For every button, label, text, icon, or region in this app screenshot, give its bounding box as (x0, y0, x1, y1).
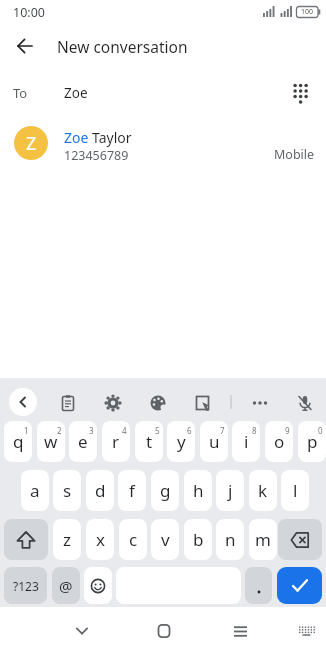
staticText: 123456789 (64, 147, 129, 164)
button[interactable] (277, 567, 322, 604)
button[interactable] (292, 616, 320, 644)
staticText: x (96, 528, 105, 551)
staticText: m (255, 528, 271, 551)
staticText: q (13, 430, 24, 453)
staticText: 4 (122, 425, 127, 436)
button[interactable]: m (249, 519, 277, 560)
staticText: Z (26, 131, 37, 156)
staticText: j (228, 479, 233, 502)
button[interactable]: t (135, 421, 163, 462)
button[interactable] (98, 388, 128, 418)
button[interactable] (245, 388, 275, 418)
button[interactable]: i (232, 421, 260, 462)
staticText: 0 (318, 425, 323, 436)
staticText: d (95, 479, 106, 502)
button[interactable]: o (265, 421, 293, 462)
staticText: w (44, 430, 58, 453)
staticText: 8 (252, 425, 257, 436)
staticText: New conversation (57, 36, 188, 57)
staticText: s (63, 479, 72, 502)
staticText: n (225, 528, 236, 551)
button[interactable]: g (151, 470, 179, 511)
staticText: ?123 (13, 578, 39, 594)
button[interactable] (290, 388, 320, 418)
button[interactable]: n (216, 519, 244, 560)
staticText: i (244, 430, 249, 453)
button[interactable] (245, 567, 272, 604)
button[interactable] (143, 388, 173, 418)
button[interactable] (4, 519, 48, 560)
button[interactable]: v (151, 519, 179, 560)
button[interactable]: d (86, 470, 114, 511)
staticText: 10:00 (13, 4, 45, 21)
button[interactable]: b (184, 519, 212, 560)
button[interactable]: l (281, 470, 309, 511)
button[interactable]: q (4, 421, 32, 462)
button[interactable]: u (200, 421, 228, 462)
staticText: e (78, 430, 88, 453)
button[interactable] (224, 615, 256, 647)
staticText: Zoe Taylor (64, 128, 132, 147)
button[interactable] (9, 30, 41, 62)
button[interactable]: j (216, 470, 244, 511)
button[interactable] (9, 388, 37, 416)
button[interactable] (53, 388, 83, 418)
staticText: t (146, 430, 153, 453)
staticText: 2 (57, 425, 62, 436)
button[interactable]: ?123 (4, 567, 47, 604)
button[interactable]: k (249, 470, 277, 511)
button[interactable] (0, 118, 326, 168)
staticText: l (293, 479, 298, 502)
staticText: 9 (285, 425, 290, 436)
staticText: 3 (89, 425, 94, 436)
staticText: r (112, 430, 120, 453)
staticText: @ (59, 576, 73, 596)
button[interactable]: x (86, 519, 114, 560)
staticText: 6 (187, 425, 192, 436)
button[interactable] (188, 388, 218, 418)
staticText: Mobile (274, 146, 315, 163)
button[interactable]: a (21, 470, 49, 511)
button[interactable]: r (102, 421, 130, 462)
staticText: 100 (301, 7, 314, 17)
button[interactable] (148, 615, 180, 647)
button[interactable] (288, 81, 314, 107)
button[interactable]: z (53, 519, 81, 560)
staticText: 5 (155, 425, 160, 436)
button[interactable]: c (119, 519, 147, 560)
button[interactable]: f (118, 470, 146, 511)
staticText: b (193, 528, 204, 551)
staticText: f (129, 479, 135, 502)
button[interactable]: @ (52, 567, 80, 604)
staticText: u (209, 430, 220, 453)
button[interactable]: p (298, 421, 326, 462)
staticText: a (30, 479, 40, 502)
staticText: 1 (24, 425, 29, 436)
staticText: o (274, 430, 285, 453)
staticText: k (258, 479, 268, 502)
staticText: p (307, 430, 318, 453)
button[interactable] (66, 615, 98, 647)
button[interactable] (278, 519, 322, 560)
button[interactable]: s (53, 470, 81, 511)
staticText: g (160, 479, 171, 502)
button[interactable]: y (167, 421, 195, 462)
button[interactable]: w (37, 421, 65, 462)
button[interactable]: h (184, 470, 212, 511)
staticText: v (161, 528, 170, 551)
staticText: z (63, 528, 71, 551)
button[interactable]: e (69, 421, 97, 462)
staticText: To (13, 84, 28, 102)
button[interactable] (84, 567, 112, 604)
staticText: c (129, 528, 138, 551)
staticText: 7 (220, 425, 225, 436)
staticText: y (177, 430, 186, 453)
staticText: Zoe (64, 84, 88, 102)
staticText: h (193, 479, 204, 502)
